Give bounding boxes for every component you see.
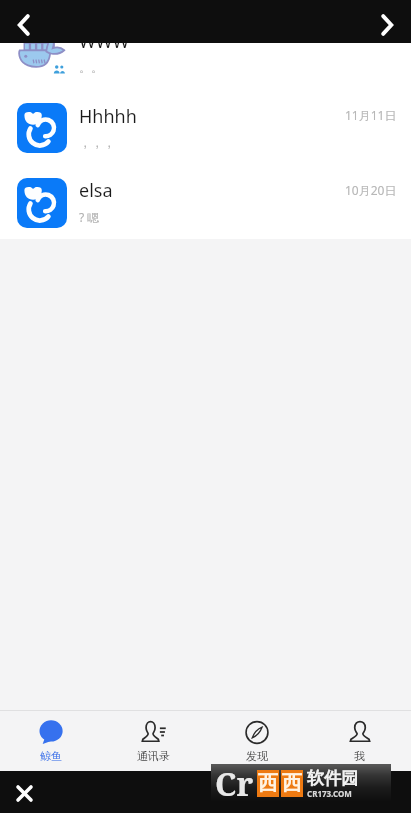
staticText: 发现 [246,749,268,763]
staticText: 鲸鱼 [40,749,62,763]
button[interactable]: 我 [308,720,411,763]
staticText: WWW [79,29,130,54]
staticText: 西 [282,771,302,796]
staticText: ，，， [79,135,115,150]
button[interactable]: Close [8,777,40,809]
button[interactable]: 鲸鱼 [0,720,102,763]
staticText: ? 嗯 [79,209,100,225]
staticText: 10月20日 [345,182,397,198]
staticText: 。。 [79,60,103,75]
staticText: Hhhhh [79,104,137,129]
staticText: 通讯录 [137,749,170,763]
staticText: 我 [354,749,365,763]
button[interactable]: 通讯录 [102,720,205,763]
button[interactable]: Forward [369,7,405,43]
staticText: 11月11日 [345,107,397,123]
staticText: elsa [79,178,113,203]
button[interactable]: WWW [0,15,411,90]
button[interactable]: Hhhhh [0,90,411,165]
staticText: Cr [215,762,254,800]
button[interactable]: Back [6,7,42,43]
staticText: CR173.COM [307,788,352,799]
staticText: 西 [258,771,278,796]
staticText: 软件园 [307,768,358,789]
button[interactable]: elsa [0,165,411,239]
button[interactable]: 发现 [205,720,308,763]
